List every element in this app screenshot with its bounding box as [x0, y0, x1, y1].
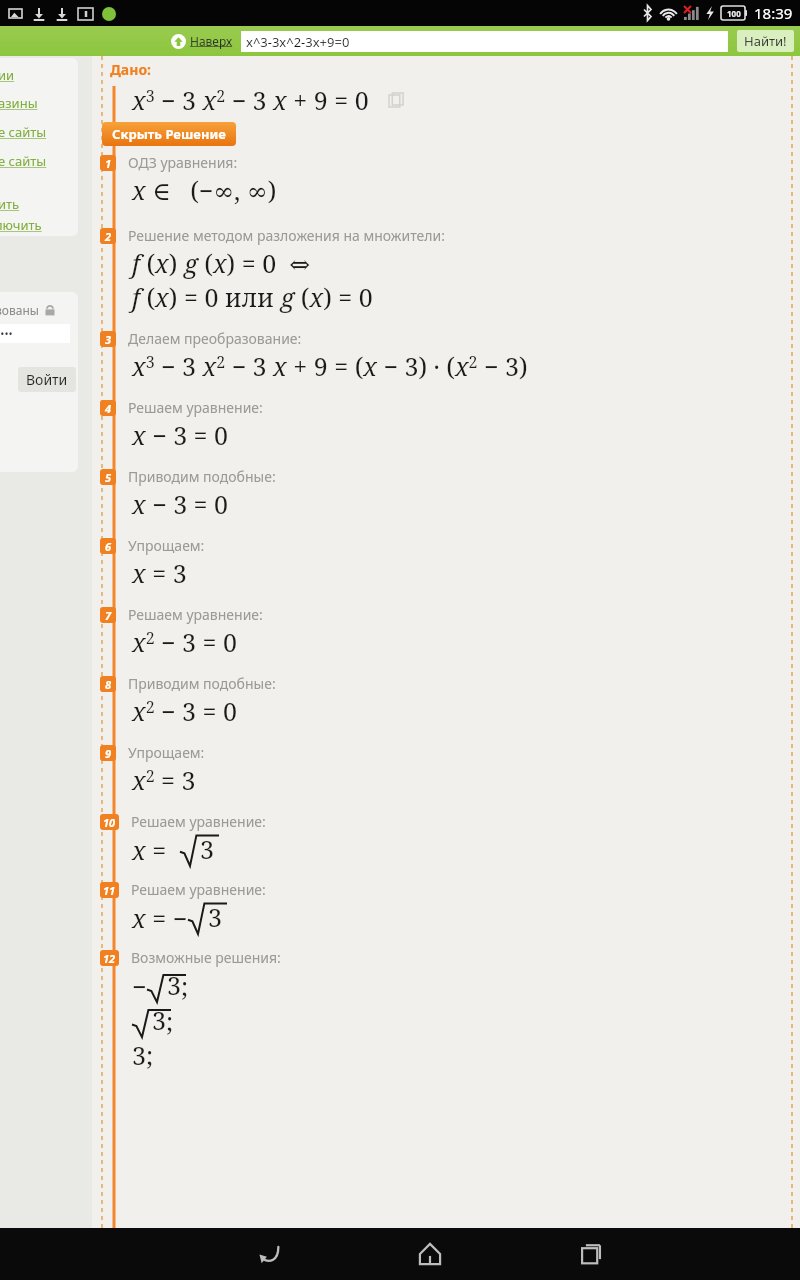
staticText: Скрыть Решение: [112, 125, 226, 143]
staticText: зованы: [0, 302, 39, 318]
staticText: Возможные решения:: [131, 948, 281, 967]
staticText: ОДЗ уравнения:: [128, 153, 238, 172]
staticText: Решаем уравнение:: [131, 812, 266, 831]
staticText: азины: [0, 94, 38, 112]
button[interactable]: Домой: [390, 1228, 470, 1280]
staticText: Дано:: [110, 60, 152, 79]
staticText: x3 − 3 x2 − 3 x + 9 = 0: [132, 83, 369, 117]
button[interactable]: x^3-3x^2-3x+9=0: [241, 31, 728, 52]
staticText: 3: [167, 968, 181, 1002]
button[interactable]: Скрыть Решение: [102, 122, 236, 146]
staticText: 100: [727, 8, 741, 19]
button[interactable]: Копировать: [389, 93, 404, 108]
staticText: е сайты: [0, 123, 47, 141]
staticText: x = −: [132, 901, 188, 935]
staticText: 3: [152, 1003, 166, 1037]
staticText: x ∈ (−∞, ∞): [132, 173, 277, 207]
staticText: 3: [208, 900, 222, 934]
staticText: x2 − 3 = 0: [132, 694, 237, 728]
staticText: f (x) = 0 или g (x) = 0: [132, 280, 373, 314]
staticText: Решаем уравнение:: [128, 398, 263, 417]
staticText: Делаем преобразование:: [128, 329, 302, 348]
staticText: Войти: [26, 370, 68, 389]
staticText: Найти!: [744, 32, 787, 50]
staticText: ;: [166, 1004, 174, 1038]
staticText: 3: [105, 332, 112, 347]
staticText: Решение методом разложения на множители:: [128, 226, 445, 245]
staticText: Приводим подобные:: [128, 467, 276, 486]
button[interactable]: ить: [0, 193, 20, 214]
staticText: Приводим подобные:: [128, 674, 276, 693]
staticText: 5: [105, 470, 112, 485]
staticText: е сайты: [0, 152, 47, 170]
staticText: 10: [103, 815, 116, 830]
staticText: 1: [105, 156, 112, 171]
staticText: 6: [105, 539, 112, 554]
staticText: x − 3 = 0: [132, 487, 229, 521]
staticText: Упрощаем:: [128, 743, 205, 762]
staticText: x2 = 3: [132, 763, 196, 797]
staticText: x3 − 3 x2 − 3 x + 9 = (x − 3) · (x2 − 3): [132, 349, 528, 383]
staticText: x − 3 = 0: [132, 418, 229, 452]
other: Наверх: [171, 34, 186, 49]
staticText: Упрощаем:: [128, 536, 205, 555]
staticText: 8: [105, 677, 112, 692]
button[interactable]: Обзор: [550, 1228, 630, 1280]
button[interactable]: азины: [0, 88, 38, 117]
staticText: 4: [105, 401, 112, 416]
button[interactable]: Наверх: [171, 33, 233, 49]
staticText: Решаем уравнение:: [131, 880, 266, 899]
staticText: ;: [181, 969, 189, 1003]
staticText: 2: [105, 229, 112, 244]
staticText: 3: [200, 832, 214, 866]
staticText: ии: [0, 66, 15, 84]
staticText: 3;: [132, 1038, 154, 1072]
staticText: 12: [103, 951, 116, 966]
staticText: x =: [132, 833, 180, 867]
staticText: x = 3: [132, 556, 187, 590]
staticText: f (x) g (x) = 0 ⇔: [132, 246, 311, 280]
button[interactable]: ии: [0, 62, 15, 88]
staticText: Решаем уравнение:: [128, 605, 263, 624]
button[interactable]: е сайты: [0, 117, 47, 146]
staticText: −: [132, 969, 147, 1003]
button[interactable]: Найти!: [737, 30, 794, 52]
staticText: 11: [103, 883, 116, 898]
staticText: 7: [105, 608, 112, 623]
button[interactable]: ключить: [0, 214, 42, 235]
staticText: x^3-3x^2-3x+9=0: [246, 33, 350, 51]
staticText: ключить: [0, 216, 42, 234]
staticText: 9: [105, 746, 112, 761]
button[interactable]: Войти: [18, 367, 76, 392]
staticText: •••••: [0, 326, 13, 341]
staticText: x2 − 3 = 0: [132, 625, 237, 659]
staticText: Наверх: [190, 33, 233, 49]
staticText: 18:39: [754, 3, 793, 23]
staticText: ить: [0, 195, 20, 213]
button[interactable]: Назад: [230, 1228, 310, 1280]
button[interactable]: е сайты: [0, 146, 47, 175]
button[interactable]: •••••: [0, 324, 70, 343]
